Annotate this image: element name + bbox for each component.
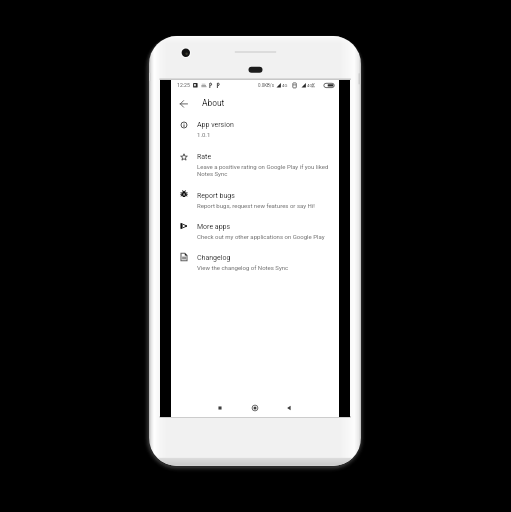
button[interactable] (171, 148, 339, 176)
staticText: 0.0KB/s (258, 83, 275, 88)
staticText: Changelog (197, 254, 231, 262)
staticText: App version (197, 121, 234, 129)
staticText: 12:25 (177, 82, 190, 88)
button[interactable] (171, 218, 339, 246)
button[interactable]: Home (244, 397, 266, 419)
button[interactable]: Recent apps (209, 397, 231, 419)
staticText: 4G (282, 83, 288, 88)
button[interactable]: Navigate up (175, 95, 191, 111)
staticText: Leave a positive rating on Google Play i… (197, 163, 335, 177)
staticText: Report bugs, request new features or say… (197, 202, 315, 209)
staticText: More apps (197, 223, 231, 231)
button[interactable] (171, 187, 339, 215)
staticText: View the changelog of Notes Sync (197, 264, 289, 271)
button[interactable]: Back (278, 397, 300, 419)
button[interactable] (171, 249, 339, 277)
staticText: Check out my other applications on Googl… (197, 233, 325, 240)
staticText: About (202, 98, 225, 108)
staticText: 4G (307, 83, 313, 88)
staticText: 1.0.1 (197, 131, 211, 138)
button[interactable] (171, 116, 339, 144)
staticText: Rate (197, 153, 212, 161)
staticText: Report bugs (197, 192, 235, 200)
